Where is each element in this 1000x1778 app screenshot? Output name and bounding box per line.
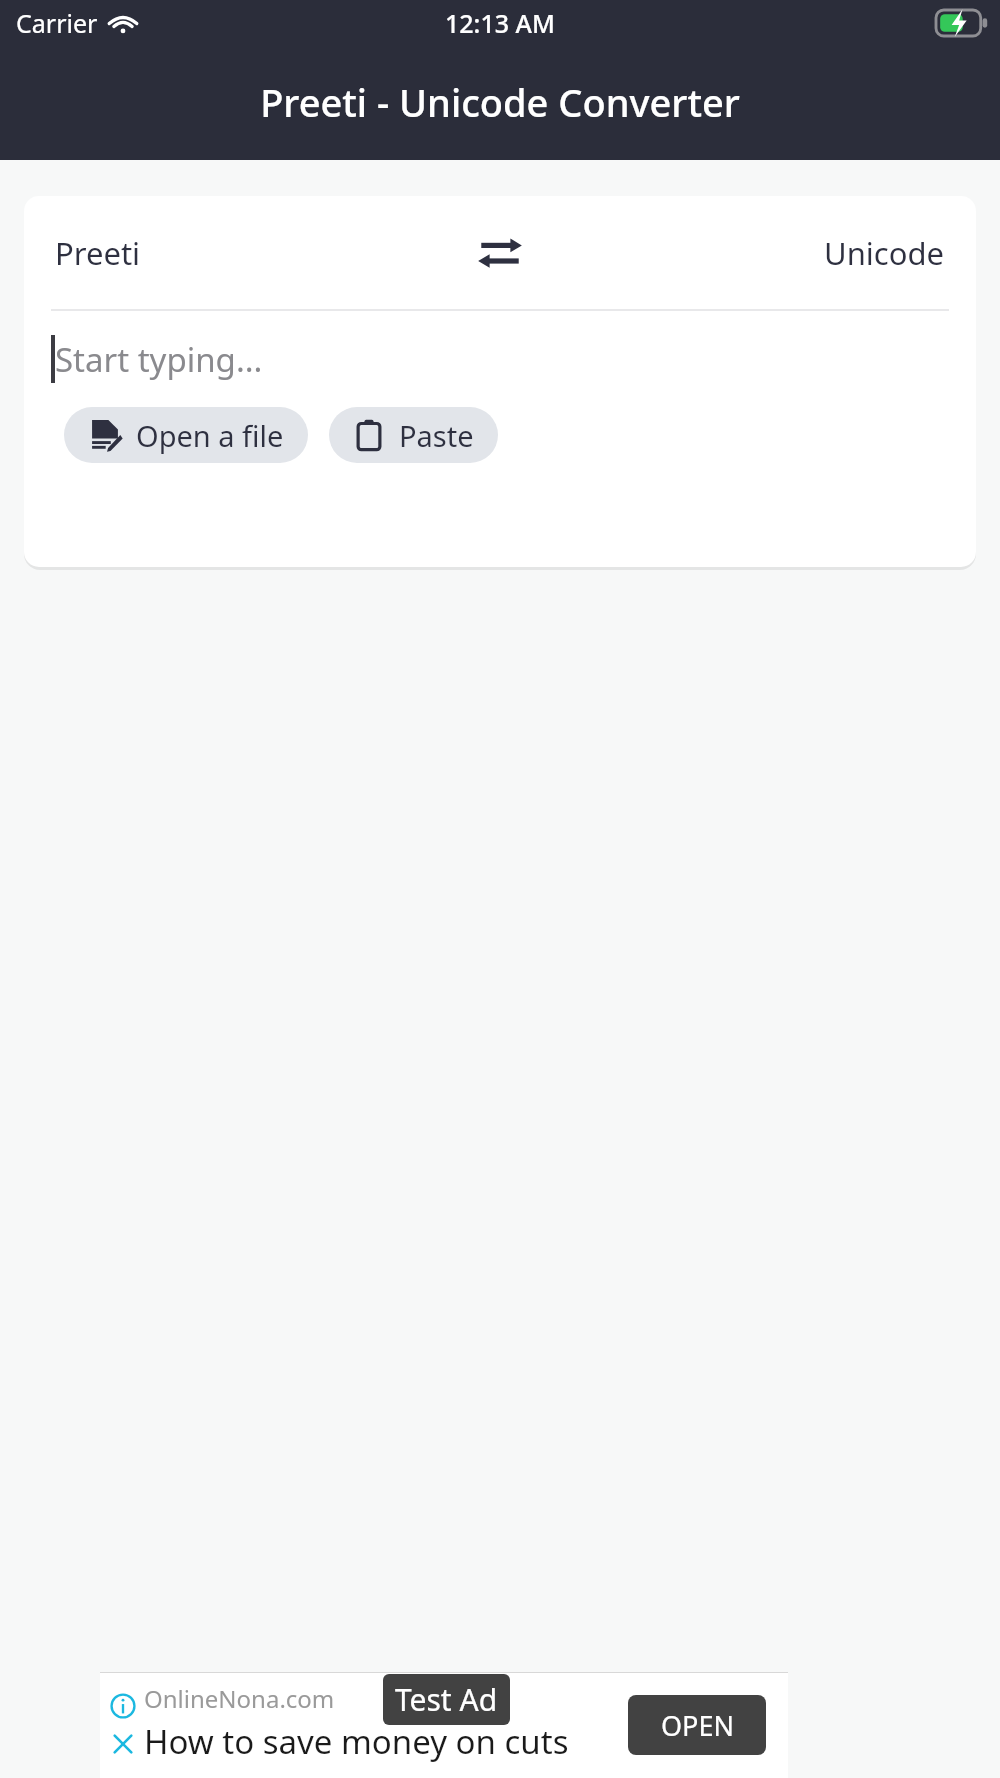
button[interactable]: Ad info <box>100 1672 788 1778</box>
button[interactable]: Preeti <box>55 232 467 274</box>
staticText: OPEN <box>661 1707 734 1744</box>
button[interactable]: Unicode <box>533 232 945 274</box>
staticText: Unicode <box>824 232 945 274</box>
staticText: 12:13 AM <box>445 6 555 40</box>
staticText: Preeti <box>55 232 141 274</box>
staticText: How to save money on cuts <box>144 1719 569 1764</box>
staticText: OnlineNona.com <box>144 1682 335 1715</box>
staticText: Open a file <box>136 416 284 455</box>
button[interactable]: Paste <box>329 407 498 463</box>
button[interactable]: Close ad <box>108 1729 138 1759</box>
button[interactable]: Ad info <box>108 1691 138 1721</box>
staticText: Start typing... <box>55 337 263 382</box>
button[interactable]: Swap languages <box>467 220 533 286</box>
staticText: Paste <box>399 416 474 455</box>
button[interactable]: OPEN <box>628 1695 766 1755</box>
staticText: Preeti - Unicode Converter <box>0 76 1000 128</box>
button[interactable]: Open a file <box>64 407 308 463</box>
staticText: Carrier <box>16 6 98 40</box>
button[interactable]: Start typing... <box>24 311 976 407</box>
staticText: Test Ad <box>395 1679 498 1720</box>
